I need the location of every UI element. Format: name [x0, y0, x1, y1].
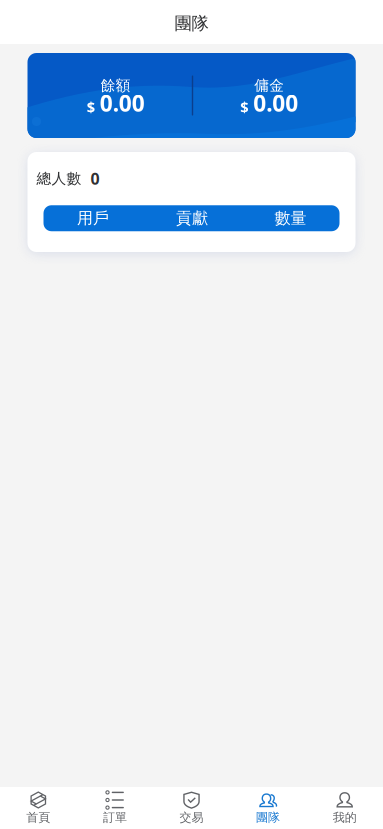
- staticText: $: [240, 97, 248, 117]
- staticText: 0.00: [253, 88, 298, 118]
- staticText: 團隊: [174, 13, 208, 34]
- button[interactable]: 首頁: [0, 787, 77, 829]
- button[interactable]: 用戶: [43, 205, 142, 231]
- staticText: 訂單: [103, 810, 127, 825]
- staticText: 0.00: [100, 88, 145, 118]
- button[interactable]: 交易: [153, 787, 230, 829]
- button[interactable]: 數量: [241, 205, 339, 231]
- button[interactable]: 團隊: [230, 787, 306, 829]
- staticText: 總人數: [36, 170, 81, 188]
- button[interactable]: 訂單: [77, 787, 153, 829]
- staticText: 交易: [179, 810, 203, 825]
- staticText: 首頁: [26, 810, 50, 825]
- staticText: $: [87, 97, 95, 117]
- staticText: 我的: [333, 810, 357, 825]
- staticText: 團隊: [256, 810, 280, 825]
- staticText: 餘額: [101, 76, 131, 94]
- staticText: 貢獻: [176, 208, 208, 228]
- staticText: 數量: [274, 208, 306, 228]
- staticText: 傭金: [254, 76, 284, 94]
- staticText: 用戶: [77, 208, 109, 228]
- staticText: 0: [90, 168, 99, 189]
- button[interactable]: 貢獻: [142, 205, 241, 231]
- button[interactable]: 我的: [306, 787, 383, 829]
